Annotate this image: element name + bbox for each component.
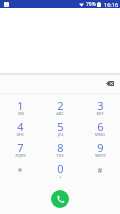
staticText: 3 xyxy=(97,98,104,113)
button[interactable]: 4 xyxy=(0,119,40,140)
staticText: WXYZ xyxy=(95,153,106,158)
staticText: 8 xyxy=(57,140,64,155)
button[interactable]: 8 xyxy=(40,140,80,161)
staticText: 2 xyxy=(57,98,64,113)
button[interactable]: 0 xyxy=(40,161,80,182)
staticText: TUV xyxy=(56,153,64,158)
button[interactable] xyxy=(80,161,120,182)
staticText: 7 xyxy=(17,140,24,155)
staticText: ABC xyxy=(56,111,64,116)
button[interactable]: 7 xyxy=(0,140,40,161)
button[interactable]: 3 xyxy=(80,98,120,119)
button[interactable]: 5 xyxy=(40,119,80,140)
button[interactable]: 2 xyxy=(40,98,80,119)
staticText: 9 xyxy=(97,140,104,155)
button[interactable]: 6 xyxy=(80,119,120,140)
staticText: DEF xyxy=(96,111,104,116)
button[interactable] xyxy=(0,161,40,182)
staticText: 4 xyxy=(17,119,24,134)
staticText: PQRS xyxy=(15,153,26,158)
staticText: 79% xyxy=(86,1,96,8)
button[interactable]: 1 xyxy=(0,98,40,119)
button[interactable]: Backspace xyxy=(103,77,116,90)
staticText: GHI xyxy=(16,132,24,137)
staticText: + xyxy=(59,174,62,179)
staticText: 1 xyxy=(17,98,24,113)
staticText: MNO xyxy=(95,132,105,137)
button[interactable]: Call xyxy=(51,190,69,208)
staticText: 16:16 xyxy=(104,1,119,8)
button[interactable]: 9 xyxy=(80,140,120,161)
staticText: 5 xyxy=(57,119,64,134)
staticText: 0 xyxy=(57,161,64,176)
staticText: JKL xyxy=(58,132,64,137)
staticText: 6 xyxy=(97,119,104,134)
